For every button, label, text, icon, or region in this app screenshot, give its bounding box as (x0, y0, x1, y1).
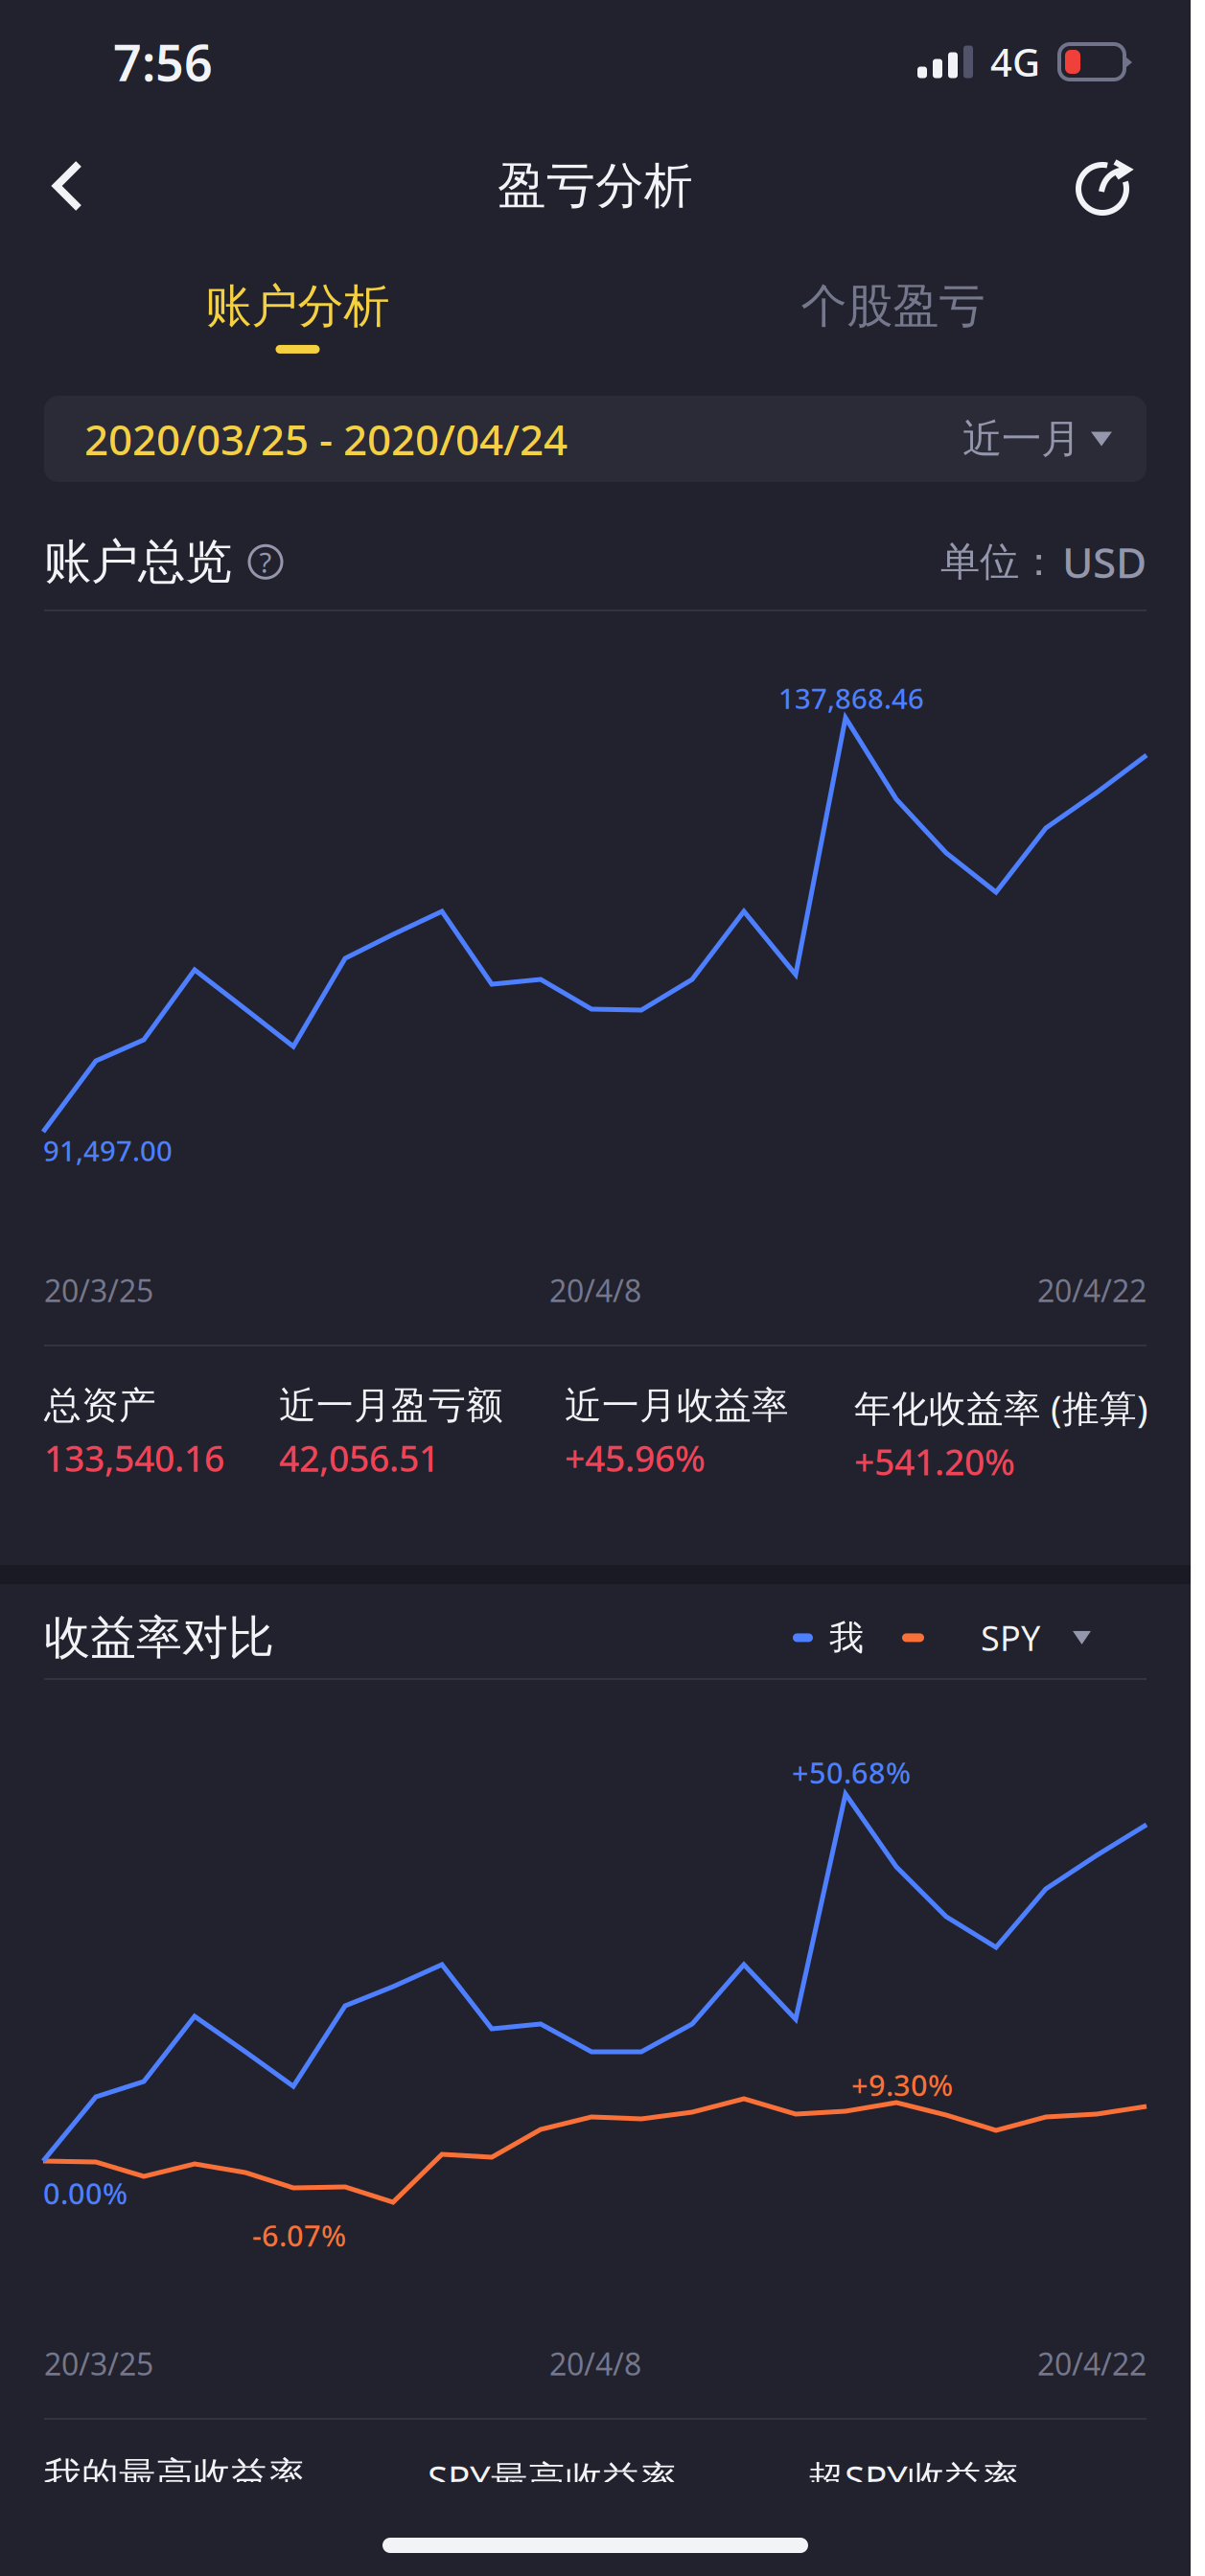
staticText: SPY最高收益率 (428, 2453, 678, 2503)
staticText: 20/3/25 (44, 1270, 153, 1311)
button[interactable]: 个股盈亏 (595, 246, 1191, 390)
button[interactable]: Choose benchmark (924, 1599, 1147, 1676)
button[interactable]: What is this (232, 534, 291, 590)
staticText: 近一月 (962, 415, 1080, 463)
staticText: 年化收益率 (推算) (854, 1383, 1148, 1432)
staticText: +541.20% (854, 1438, 1015, 1485)
staticText: 账户总览 (44, 533, 232, 591)
button[interactable]: Back (0, 128, 108, 243)
staticText: 个股盈亏 (801, 278, 985, 334)
staticText: 133,540.16 (44, 1434, 224, 1482)
staticText: +50.68% (792, 1753, 911, 1792)
staticText: ? (259, 543, 272, 581)
button[interactable]: Share (1053, 128, 1191, 243)
staticText: 20/4/8 (549, 1270, 641, 1311)
staticText: -6.07% (252, 2216, 346, 2255)
staticText: 近一月收益率 (565, 1383, 789, 1428)
staticText: +9.30% (851, 2065, 953, 2104)
staticText: 近一月盈亏额 (279, 1383, 503, 1428)
staticText: SPY (981, 1615, 1040, 1661)
staticText: 137,868.46 (778, 679, 924, 717)
staticText: 单位： (940, 538, 1058, 586)
staticText: 总资产 (44, 1383, 156, 1428)
staticText: 4G (990, 36, 1040, 87)
button[interactable]: 2020/03/25 - 2020/04/24 (44, 396, 1147, 482)
staticText: 我 (829, 1617, 864, 1659)
staticText: 20/3/25 (44, 2343, 153, 2384)
staticText: 收益率对比 (44, 1609, 274, 1666)
staticText: 账户分析 (206, 278, 390, 334)
staticText: 盈亏分析 (498, 156, 693, 216)
staticText: 20/4/8 (549, 2343, 641, 2384)
staticText: +45.96% (565, 1434, 706, 1482)
staticText: 2020/03/25 - 2020/04/24 (84, 411, 568, 467)
staticText: 我的最高收益率 (44, 2453, 306, 2499)
staticText: 20/4/22 (1037, 2343, 1147, 2384)
staticText: 20/4/22 (1037, 1270, 1147, 1311)
staticText: 超SPY收益率 (807, 2453, 1020, 2502)
staticText: 42,056.51 (279, 1434, 439, 1482)
staticText: USD (1062, 534, 1147, 590)
staticText: 0.00% (43, 2173, 127, 2213)
staticText: 7:56 (113, 29, 213, 95)
button[interactable]: 账户分析 (0, 246, 595, 390)
staticText: 91,497.00 (43, 1132, 173, 1169)
